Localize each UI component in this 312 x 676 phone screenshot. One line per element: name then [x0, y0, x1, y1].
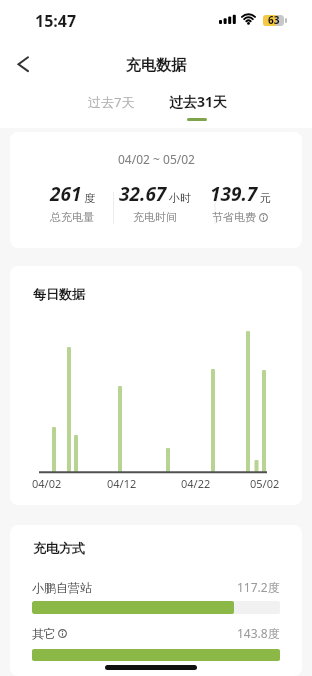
staticText: 04/02: [32, 476, 62, 491]
staticText: 05/02: [250, 476, 280, 491]
staticText: 04/02 ~ 05/02: [118, 151, 195, 167]
staticText: 04/22: [181, 476, 211, 491]
staticText: 63: [268, 13, 280, 27]
staticText: 总充电量: [50, 210, 94, 224]
staticText: 度: [84, 191, 95, 205]
staticText: 32.67: [119, 181, 167, 207]
staticText: 小鹏自营站: [32, 580, 92, 595]
staticText: 过去7天: [88, 93, 135, 111]
button[interactable]: 过去7天: [71, 92, 151, 112]
button[interactable]: 小鹏自营站: [32, 579, 280, 595]
staticText: 元: [260, 191, 271, 205]
staticText: 充电数据: [126, 56, 186, 75]
staticText: 117.2度: [237, 579, 280, 595]
staticText: 04/12: [107, 476, 137, 491]
staticText: 261: [50, 181, 82, 207]
button[interactable]: 其它: [32, 625, 280, 641]
button[interactable]: [8, 50, 38, 78]
staticText: 过去31天: [169, 92, 228, 111]
staticText: 139.7: [210, 181, 258, 207]
staticText: 小时: [169, 191, 191, 205]
button[interactable]: 过去31天: [158, 91, 238, 112]
staticText: 其它: [32, 626, 56, 641]
staticText: 15:47: [35, 10, 77, 32]
staticText: 充电方式: [33, 540, 85, 556]
staticText: 节省电费: [212, 210, 256, 224]
staticText: 143.8度: [237, 625, 280, 641]
staticText: 充电时间: [133, 210, 177, 224]
staticText: 每日数据: [33, 286, 85, 302]
